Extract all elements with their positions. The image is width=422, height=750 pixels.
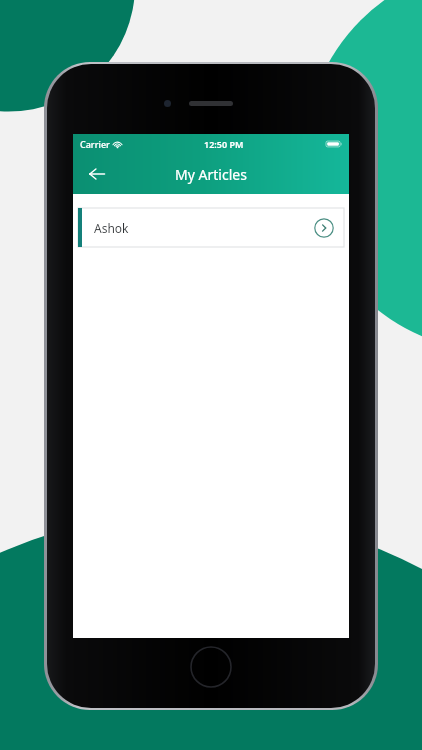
button[interactable]: Open article	[314, 218, 334, 238]
staticText: My Articles	[175, 165, 247, 184]
staticText: Ashok	[94, 220, 129, 236]
button[interactable]: Back	[81, 158, 113, 190]
staticText: 12:50 PM	[204, 138, 244, 150]
staticText: Carrier	[80, 138, 110, 150]
button[interactable]: Ashok	[78, 208, 344, 247]
